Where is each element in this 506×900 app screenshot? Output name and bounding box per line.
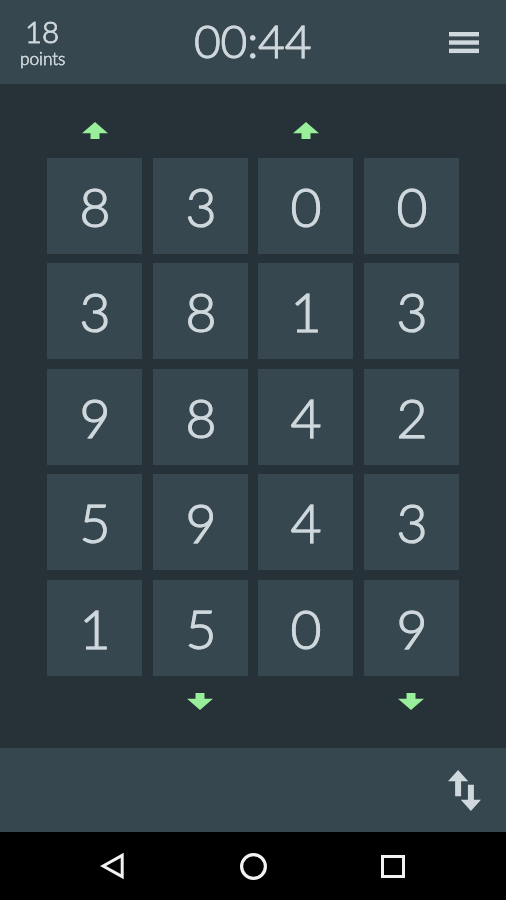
staticText: 9: [185, 490, 217, 554]
staticText: 8: [185, 279, 217, 343]
button[interactable]: 5: [153, 580, 248, 676]
button[interactable]: 18: [12, 6, 78, 74]
button[interactable]: 0: [364, 158, 459, 254]
staticText: 3: [185, 174, 217, 238]
staticText: 8: [185, 385, 217, 449]
staticText: 5: [79, 490, 111, 554]
staticText: 5: [79, 490, 111, 554]
staticText: 1: [79, 596, 111, 660]
staticText: 3: [79, 279, 111, 343]
button[interactable]: Home: [229, 842, 277, 890]
button[interactable]: 4: [258, 474, 353, 570]
staticText: 9: [396, 596, 428, 660]
button[interactable]: Recents: [369, 842, 417, 890]
staticText: 1: [290, 279, 322, 343]
staticText: 8: [79, 174, 111, 238]
button[interactable]: Shift column down: [394, 688, 428, 714]
staticText: 9: [79, 385, 111, 449]
button[interactable]: Shift column up: [78, 117, 112, 143]
button[interactable]: 3: [364, 474, 459, 570]
staticText: 0: [290, 174, 322, 238]
staticText: 0: [396, 174, 428, 238]
staticText: 00:44: [194, 12, 312, 67]
staticText: 4: [290, 490, 322, 554]
staticText: 0: [290, 174, 322, 238]
button[interactable]: Menu: [440, 18, 488, 66]
button[interactable]: 0: [258, 580, 353, 676]
staticText: 4: [290, 385, 322, 449]
staticText: 0: [290, 596, 322, 660]
button[interactable]: Swap: [437, 763, 491, 817]
button[interactable]: 1: [47, 580, 142, 676]
button[interactable]: 8: [153, 263, 248, 359]
staticText: 3: [396, 490, 428, 554]
staticText: 8: [79, 174, 111, 238]
button[interactable]: Shift column down: [183, 688, 217, 714]
staticText: points: [20, 48, 66, 69]
staticText: 3: [396, 279, 428, 343]
staticText: 8: [185, 385, 217, 449]
button[interactable]: 1: [258, 263, 353, 359]
button[interactable]: 0: [258, 158, 353, 254]
button[interactable]: 9: [364, 580, 459, 676]
button[interactable]: 8: [153, 369, 248, 465]
staticText: 3: [79, 279, 111, 343]
staticText: 4: [290, 490, 322, 554]
staticText: 0: [290, 596, 322, 660]
staticText: 3: [396, 279, 428, 343]
button[interactable]: 3: [153, 158, 248, 254]
staticText: 0: [396, 174, 428, 238]
button[interactable]: 3: [47, 263, 142, 359]
button[interactable]: 9: [153, 474, 248, 570]
button[interactable]: 9: [47, 369, 142, 465]
staticText: 00:44: [194, 12, 312, 67]
button[interactable]: Shift column up: [289, 117, 323, 143]
staticText: 3: [396, 490, 428, 554]
staticText: 9: [396, 596, 428, 660]
button[interactable]: 4: [258, 369, 353, 465]
staticText: 5: [185, 596, 217, 660]
staticText: 5: [185, 596, 217, 660]
staticText: 8: [185, 279, 217, 343]
staticText: 9: [185, 490, 217, 554]
button[interactable]: Back: [88, 842, 136, 890]
staticText: points: [20, 48, 66, 69]
staticText: 18: [25, 14, 60, 49]
staticText: 4: [290, 385, 322, 449]
button[interactable]: 5: [47, 474, 142, 570]
staticText: 2: [396, 385, 428, 449]
button[interactable]: 8: [47, 158, 142, 254]
staticText: 9: [79, 385, 111, 449]
staticText: 1: [290, 279, 322, 343]
button[interactable]: 3: [364, 263, 459, 359]
staticText: 3: [185, 174, 217, 238]
staticText: 18: [25, 14, 60, 49]
staticText: 1: [79, 596, 111, 660]
button[interactable]: 2: [364, 369, 459, 465]
staticText: 2: [396, 385, 428, 449]
